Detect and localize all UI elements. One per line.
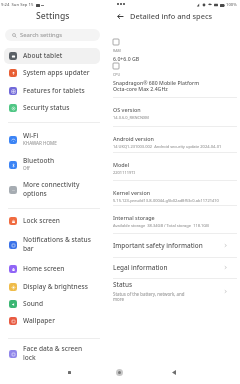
staticText: Kernel version <box>113 189 151 196</box>
staticText: Off <box>23 165 30 171</box>
staticText: Status <box>113 280 133 289</box>
staticText: Important safety information <box>113 241 203 250</box>
staticText: Display & brightness <box>23 282 88 291</box>
staticText: Home screen <box>23 264 65 273</box>
staticText: About tablet <box>23 51 63 60</box>
button[interactable]: Back <box>164 362 184 382</box>
button[interactable]: Lock screen <box>4 213 100 229</box>
staticText: 100% <box>226 2 237 8</box>
button[interactable]: Back <box>115 11 125 21</box>
staticText: Search settings <box>20 31 63 39</box>
staticText: Status of the battery, network, and more <box>113 291 185 303</box>
button[interactable]: Status <box>113 278 237 304</box>
staticText: Bluetooth <box>23 156 55 165</box>
button[interactable]: Important safety information <box>113 233 237 257</box>
button[interactable]: Search settings <box>5 29 100 41</box>
button[interactable]: Legal information <box>113 257 237 278</box>
button[interactable]: Sound <box>4 296 100 312</box>
staticText: Lock screen <box>23 216 60 225</box>
button[interactable]: Notifications & status bar <box>4 234 100 255</box>
staticText: KHAWAR HOME <box>23 140 57 146</box>
button[interactable]: Home screen <box>4 261 100 277</box>
button[interactable]: Face data & screen lock <box>4 343 100 364</box>
button[interactable]: Recents <box>59 362 79 382</box>
staticText: Face data & screen lock <box>23 344 83 362</box>
staticText: System apps updater <box>23 68 90 77</box>
button[interactable]: More connectivity options <box>4 179 100 200</box>
staticText: Available storage 38.34GB / Total storag… <box>113 223 209 228</box>
staticText: Model <box>113 161 130 168</box>
button[interactable]: Security status <box>4 100 100 116</box>
staticText: Wallpaper <box>23 316 55 325</box>
staticText: Detailed info and specs <box>130 11 213 21</box>
button[interactable]: About tablet <box>4 48 100 64</box>
staticText: 5.15.123-preuild13-8-00044-g5b02ad8f53c0… <box>113 198 219 203</box>
staticText: Legal information <box>113 263 168 272</box>
staticText: 22011119TI <box>113 170 135 175</box>
staticText: Snapdragon® 680 Mobile Platform Octa-cor… <box>113 79 200 92</box>
button[interactable]: Wi-Fi <box>4 129 100 150</box>
button[interactable]: Bluetooth <box>4 154 100 175</box>
staticText: CPU <box>113 72 121 77</box>
staticText: Security status <box>23 103 70 112</box>
staticText: OS version <box>113 106 141 113</box>
staticText: Sound <box>23 299 44 308</box>
staticText: Android version <box>113 135 154 142</box>
staticText: 14 UKQ1.231003.002 Android security upda… <box>113 144 222 149</box>
button[interactable]: Display & brightness <box>4 279 100 295</box>
staticText: More connectivity options <box>23 180 80 198</box>
button[interactable]: Wallpaper <box>4 313 100 329</box>
staticText: 9:24 Sun Sep 15 <box>1 2 34 8</box>
button[interactable]: Home <box>109 362 129 382</box>
button[interactable]: System apps updater <box>4 65 100 81</box>
button[interactable]: Features for tablets <box>4 83 100 99</box>
staticText: 14.0.6.0_RKNCNXM <box>113 115 149 120</box>
staticText: RAM <box>113 48 121 53</box>
staticText: 6.0+6.0 GB <box>113 55 140 62</box>
staticText: Internal storage <box>113 214 155 221</box>
staticText: Notifications & status bar <box>23 235 91 253</box>
staticText: Wi-Fi <box>23 131 39 140</box>
staticText: Settings <box>36 10 70 22</box>
staticText: Features for tablets <box>23 86 85 95</box>
